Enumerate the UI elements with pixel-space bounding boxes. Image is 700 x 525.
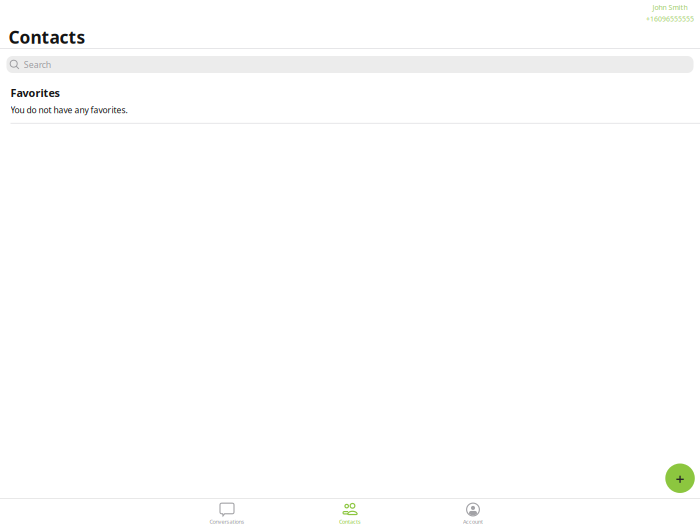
staticText: Contacts xyxy=(339,518,361,525)
staticText: Conversations xyxy=(209,518,244,525)
staticText: Search xyxy=(24,58,51,70)
staticText: Contacts xyxy=(8,25,85,49)
staticText: Favorites xyxy=(10,85,59,100)
staticText: John Smith xyxy=(652,3,687,12)
button[interactable]: Contacts xyxy=(288,497,411,525)
button[interactable]: Conversations xyxy=(165,497,288,525)
button[interactable]: Account xyxy=(411,497,534,525)
staticText: +16096555555 xyxy=(646,14,694,23)
button[interactable]: Add contact xyxy=(665,463,695,493)
staticText: You do not have any favorites. xyxy=(10,104,127,116)
staticText: Account xyxy=(463,518,483,525)
